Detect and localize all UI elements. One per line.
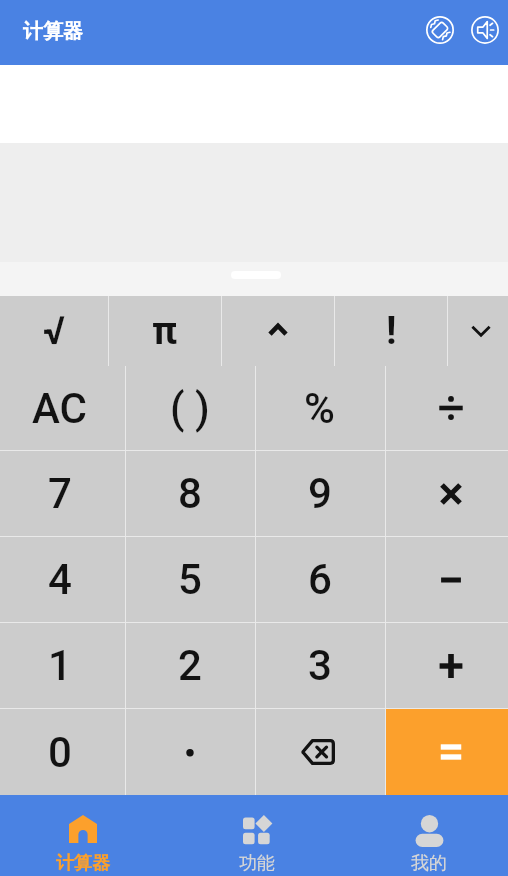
button[interactable]	[386, 623, 508, 708]
button[interactable]: 4	[0, 537, 125, 622]
staticText: 8	[178, 469, 202, 518]
staticText: 9	[308, 469, 332, 518]
button[interactable]: 3	[256, 623, 385, 708]
staticText: 5	[178, 555, 202, 604]
staticText: 0	[48, 728, 72, 777]
button[interactable]	[126, 709, 255, 795]
button[interactable]: 8	[126, 451, 255, 536]
button[interactable]: 1	[0, 623, 125, 708]
button[interactable]: %	[256, 366, 385, 450]
button[interactable]: Vibrate	[417, 7, 462, 52]
button[interactable]: Equals	[386, 709, 508, 795]
button[interactable]: 我的	[339, 795, 508, 876]
button[interactable]: √	[0, 296, 108, 366]
button[interactable]: π	[109, 296, 221, 366]
button[interactable]: Sound	[462, 7, 507, 52]
staticText: 我的	[411, 852, 447, 875]
staticText: AC	[32, 384, 87, 433]
staticText: 功能	[239, 852, 275, 875]
button[interactable]: 5	[126, 537, 255, 622]
staticText: 7	[48, 469, 72, 518]
button[interactable]: Collapse	[448, 296, 508, 366]
button[interactable]: 2	[126, 623, 255, 708]
button[interactable]: ( )	[126, 366, 255, 450]
staticText: π	[152, 308, 178, 354]
staticText: 3	[308, 641, 332, 690]
button[interactable]: Delete	[256, 709, 385, 795]
staticText: 1	[48, 641, 72, 690]
button[interactable]: 计算器	[0, 795, 170, 876]
button[interactable]: 功能	[170, 795, 339, 876]
staticText: 4	[48, 555, 72, 604]
staticText: 6	[308, 555, 332, 604]
button[interactable]: AC	[0, 366, 125, 450]
staticText: √	[43, 308, 65, 354]
button[interactable]: 6	[256, 537, 385, 622]
button[interactable]: !	[335, 296, 447, 366]
staticText: !	[386, 308, 397, 354]
staticText: %	[304, 384, 335, 433]
staticText: 计算器	[56, 852, 110, 875]
button[interactable]: 0	[0, 709, 125, 795]
button[interactable]	[386, 366, 508, 450]
button[interactable]: 7	[0, 451, 125, 536]
button[interactable]	[222, 296, 334, 366]
staticText: ( )	[170, 384, 210, 433]
staticText: 计算器	[23, 19, 83, 44]
button[interactable]: 9	[256, 451, 385, 536]
button[interactable]	[386, 451, 508, 536]
staticText: 2	[178, 641, 202, 690]
button[interactable]	[386, 537, 508, 622]
